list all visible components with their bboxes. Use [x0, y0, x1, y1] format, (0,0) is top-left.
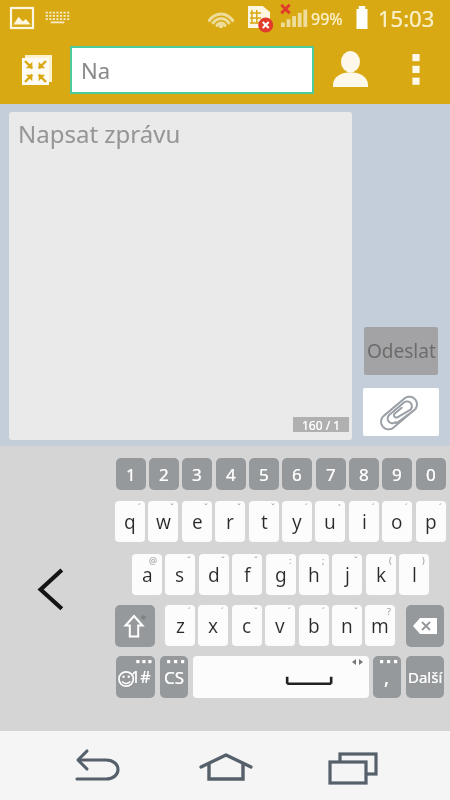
button[interactable]: 4	[216, 458, 246, 490]
staticText: ´	[439, 501, 442, 513]
button[interactable]: u	[315, 501, 345, 542]
staticText: ´	[188, 605, 191, 617]
staticText: 2	[159, 463, 169, 486]
button[interactable]: Attach	[363, 388, 439, 436]
staticText: ˇ	[187, 554, 191, 566]
button[interactable]: g	[266, 554, 296, 595]
button[interactable]: Recents	[317, 743, 389, 791]
staticText: Napsat zprávu	[18, 117, 181, 150]
button[interactable]: t	[249, 501, 279, 542]
staticText: ´	[405, 501, 408, 513]
staticText: i	[362, 509, 367, 535]
staticText: ˇ	[170, 501, 174, 513]
staticText: r	[226, 509, 234, 535]
button[interactable]: Napsat zprávu	[9, 112, 352, 440]
staticText: o	[391, 509, 403, 535]
staticText: k	[376, 562, 387, 588]
staticText: 160 / 1	[302, 417, 341, 432]
button[interactable]: o	[382, 501, 412, 542]
staticText: 1#	[131, 666, 151, 688]
staticText: x	[208, 613, 219, 639]
button[interactable]: Shift	[115, 605, 155, 647]
staticText: ?	[387, 605, 391, 617]
button[interactable]: c	[232, 605, 262, 646]
button[interactable]: 2	[149, 458, 179, 490]
button[interactable]: b	[299, 605, 329, 646]
staticText: ´	[138, 501, 141, 513]
button[interactable]: x	[198, 605, 228, 646]
button[interactable]: j	[332, 554, 362, 595]
button[interactable]: Contacts	[325, 44, 376, 94]
staticText: ´	[221, 605, 224, 617]
staticText: 5	[259, 463, 269, 486]
staticText: 6	[292, 463, 302, 486]
staticText: 3	[192, 463, 202, 486]
button[interactable]: l	[399, 554, 429, 595]
button[interactable]: Previous	[32, 562, 74, 614]
staticText: q	[124, 509, 136, 535]
button[interactable]: 9	[382, 458, 412, 490]
staticText: ´	[305, 501, 308, 513]
button[interactable]: w	[148, 501, 178, 542]
button[interactable]: r	[215, 501, 245, 542]
staticText: t	[261, 509, 268, 535]
button[interactable]: 7	[316, 458, 346, 490]
staticText: 0	[426, 463, 436, 486]
button[interactable]: 3	[182, 458, 212, 490]
button[interactable]: 5	[249, 458, 279, 490]
button[interactable]: z	[165, 605, 195, 646]
button[interactable]: f	[232, 554, 262, 595]
button[interactable]: Symbols	[116, 656, 155, 698]
staticText: Další	[408, 667, 443, 687]
staticText: c	[242, 613, 252, 639]
button[interactable]: i	[349, 501, 379, 542]
button[interactable]: CS	[160, 656, 188, 698]
staticText: h	[308, 562, 320, 588]
button[interactable]: k	[366, 554, 396, 595]
button[interactable]: Backspace	[406, 605, 444, 647]
staticText: ˇ	[354, 554, 358, 566]
button[interactable]: n	[332, 605, 362, 646]
button[interactable]: Collapse	[15, 49, 55, 89]
button[interactable]: v	[265, 605, 295, 646]
button[interactable]: s	[165, 554, 195, 595]
staticText: p	[425, 509, 437, 535]
button[interactable]: Na	[70, 46, 314, 94]
staticText: ˇ	[237, 501, 241, 513]
staticText: 99%	[311, 8, 343, 30]
button[interactable]: More options	[398, 44, 434, 94]
staticText: m	[371, 613, 389, 639]
button[interactable]: d	[199, 554, 229, 595]
staticText: 9	[392, 463, 402, 486]
staticText: @	[149, 554, 158, 566]
staticText: Na	[81, 55, 111, 85]
staticText: w	[156, 509, 171, 535]
button[interactable]: a	[132, 554, 162, 595]
button[interactable]: Odeslat	[364, 327, 438, 375]
staticText: ´	[372, 501, 375, 513]
button[interactable]: Další	[406, 656, 444, 698]
button[interactable]: 8	[349, 458, 379, 490]
button[interactable]: p	[416, 501, 446, 542]
staticText: d	[208, 562, 220, 588]
button[interactable]: h	[299, 554, 329, 595]
button[interactable]: Back	[65, 743, 137, 791]
button[interactable]: 6	[282, 458, 312, 490]
staticText: ˇ	[254, 605, 258, 617]
button[interactable]: e	[182, 501, 212, 542]
staticText: z	[176, 613, 185, 639]
staticText: e	[192, 509, 203, 535]
staticText: ;	[322, 554, 325, 566]
button[interactable]: y	[282, 501, 312, 542]
staticText: ´	[322, 605, 325, 617]
button[interactable]: 1	[116, 458, 146, 490]
button[interactable]: Space	[193, 656, 369, 698]
button[interactable]: m	[365, 605, 395, 646]
button[interactable]: 0	[416, 458, 446, 490]
staticText: CS	[164, 666, 185, 689]
button[interactable]: ,	[373, 656, 401, 698]
button[interactable]: Home	[190, 743, 262, 791]
staticText: u	[324, 509, 336, 535]
button[interactable]: q	[115, 501, 145, 542]
staticText: 1	[126, 463, 136, 486]
